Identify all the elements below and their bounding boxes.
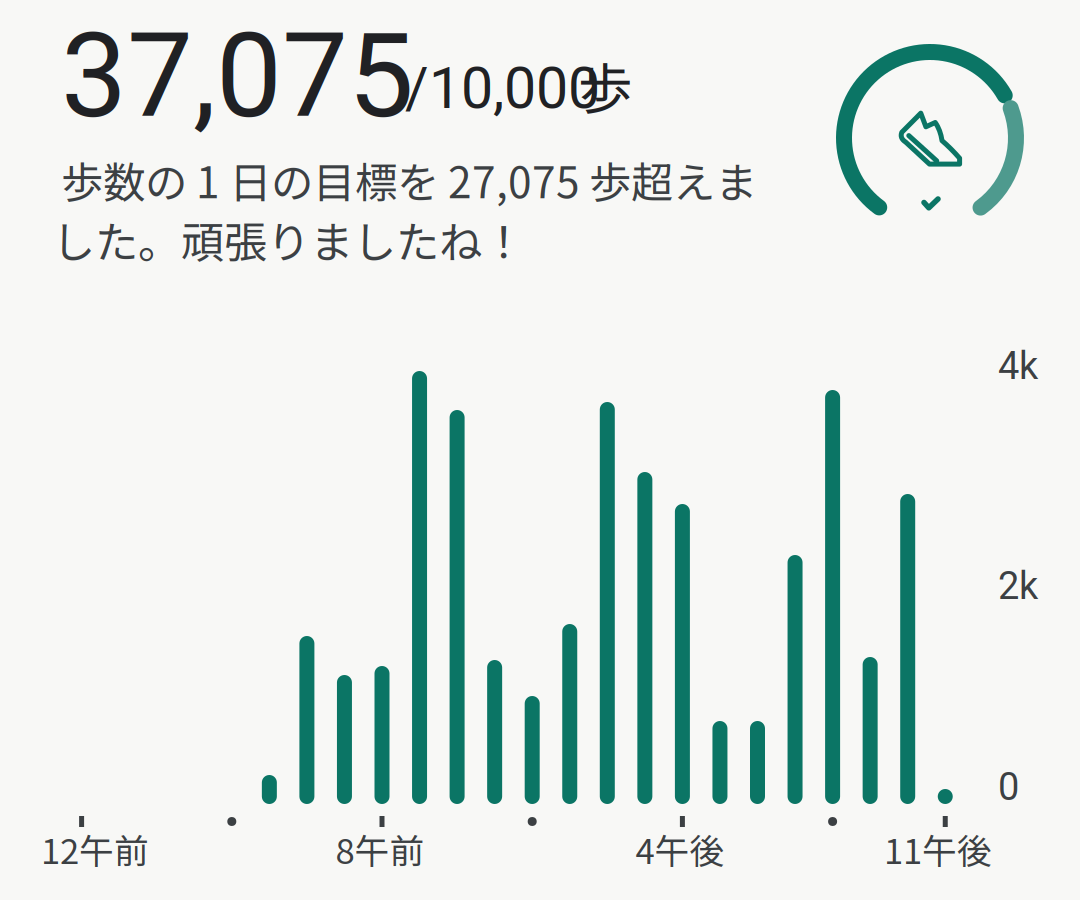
staticText: 4午後 [635, 824, 724, 874]
staticText: 0 [998, 765, 1019, 809]
staticText: 12午前 [41, 824, 149, 874]
staticText: /10,000 [405, 55, 600, 122]
button[interactable]: 37,075 [0, 0, 1080, 290]
staticText: 8午前 [335, 824, 424, 874]
staticText: 歩数の 1 日の目標を 27,075 歩超えま [61, 149, 757, 210]
staticText: した。頑張りましたね！ [52, 208, 525, 271]
staticText: 11午後 [884, 824, 992, 874]
staticText: 4k [998, 344, 1038, 388]
staticText: 歩 [578, 46, 633, 125]
staticText: 2k [998, 564, 1038, 608]
staticText: 37,075 [61, 7, 414, 145]
button[interactable]: 1 日の歩数グラフ [0, 300, 1080, 900]
